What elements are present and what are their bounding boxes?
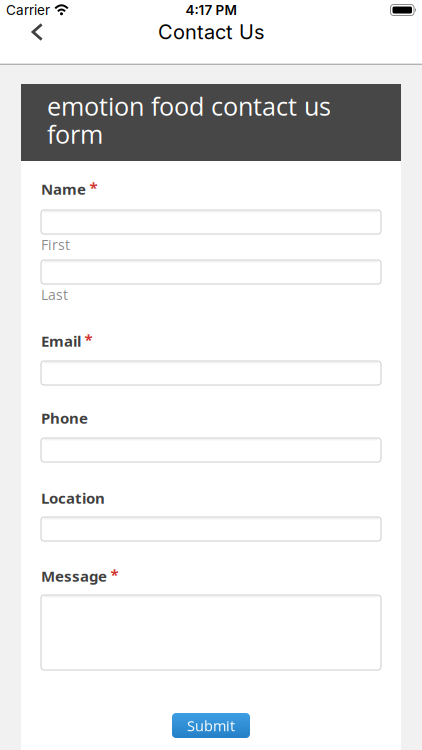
button[interactable]: Name — Last [41,260,381,284]
staticText: Phone [41,408,88,428]
button[interactable]: Submit [172,713,250,738]
button[interactable]: Location [41,517,381,541]
staticText: emotion food contact us [47,89,331,123]
staticText: Last [41,285,68,304]
button[interactable]: Message [41,595,381,670]
staticText: Email [41,331,81,351]
button[interactable]: Email [41,361,381,385]
staticText: 4:17 PM [185,2,236,18]
staticText: Contact Us [158,20,264,44]
staticText: Submit [187,716,235,735]
staticText: * [84,329,92,350]
staticText: * [110,564,118,585]
staticText: Message [41,566,107,586]
staticText: form [47,117,103,151]
staticText: * [89,177,97,198]
button[interactable]: Phone [41,438,381,462]
staticText: Carrier [6,2,50,18]
staticText: Name [41,179,86,199]
staticText: Location [41,488,105,508]
staticText: First [41,235,70,254]
button[interactable]: Back [0,20,58,44]
button[interactable]: Name — First [41,210,381,234]
